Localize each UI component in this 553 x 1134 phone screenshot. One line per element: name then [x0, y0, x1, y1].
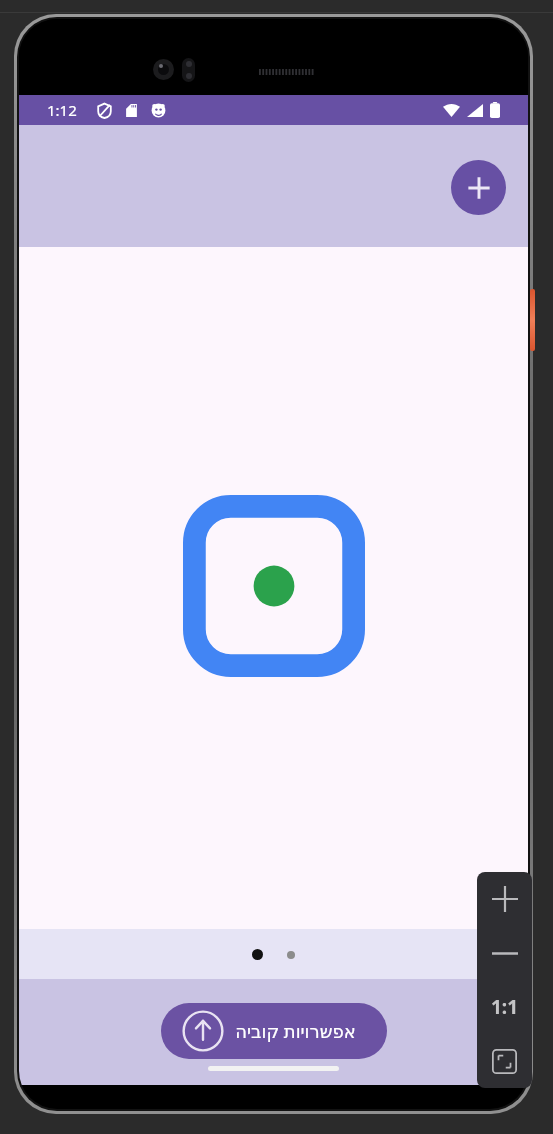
button[interactable]: Die showing one [183, 495, 365, 677]
button[interactable]: Zoom in [477, 872, 532, 926]
button[interactable]: אפשרויות קוביה [161, 1003, 387, 1059]
button[interactable]: Page 2 [287, 951, 295, 959]
button[interactable]: Actual size [477, 980, 532, 1034]
button[interactable]: Zoom out [477, 926, 532, 980]
button[interactable]: Fit to window [477, 1034, 532, 1088]
staticText: אפשרויות קוביה [235, 1019, 356, 1044]
button[interactable]: Page 1 [252, 949, 263, 960]
staticText: 1:1 [491, 994, 519, 1020]
staticText: 1:12 [47, 100, 77, 120]
button[interactable]: Add [451, 160, 506, 215]
